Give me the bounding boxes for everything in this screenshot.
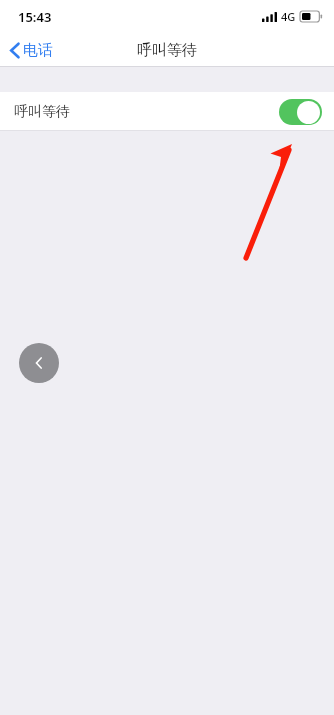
staticText: 4G bbox=[281, 9, 296, 24]
button[interactable]: 呼叫等待 bbox=[0, 92, 334, 131]
staticText: 呼叫等待 bbox=[137, 41, 197, 60]
button[interactable]: Back bbox=[19, 343, 59, 383]
staticText: 电话 bbox=[23, 41, 53, 60]
staticText: 呼叫等待 bbox=[14, 103, 70, 121]
button[interactable]: 电话 bbox=[0, 33, 61, 67]
button[interactable]: Call waiting toggle, on bbox=[279, 99, 322, 125]
staticText: 15:43 bbox=[18, 8, 52, 26]
